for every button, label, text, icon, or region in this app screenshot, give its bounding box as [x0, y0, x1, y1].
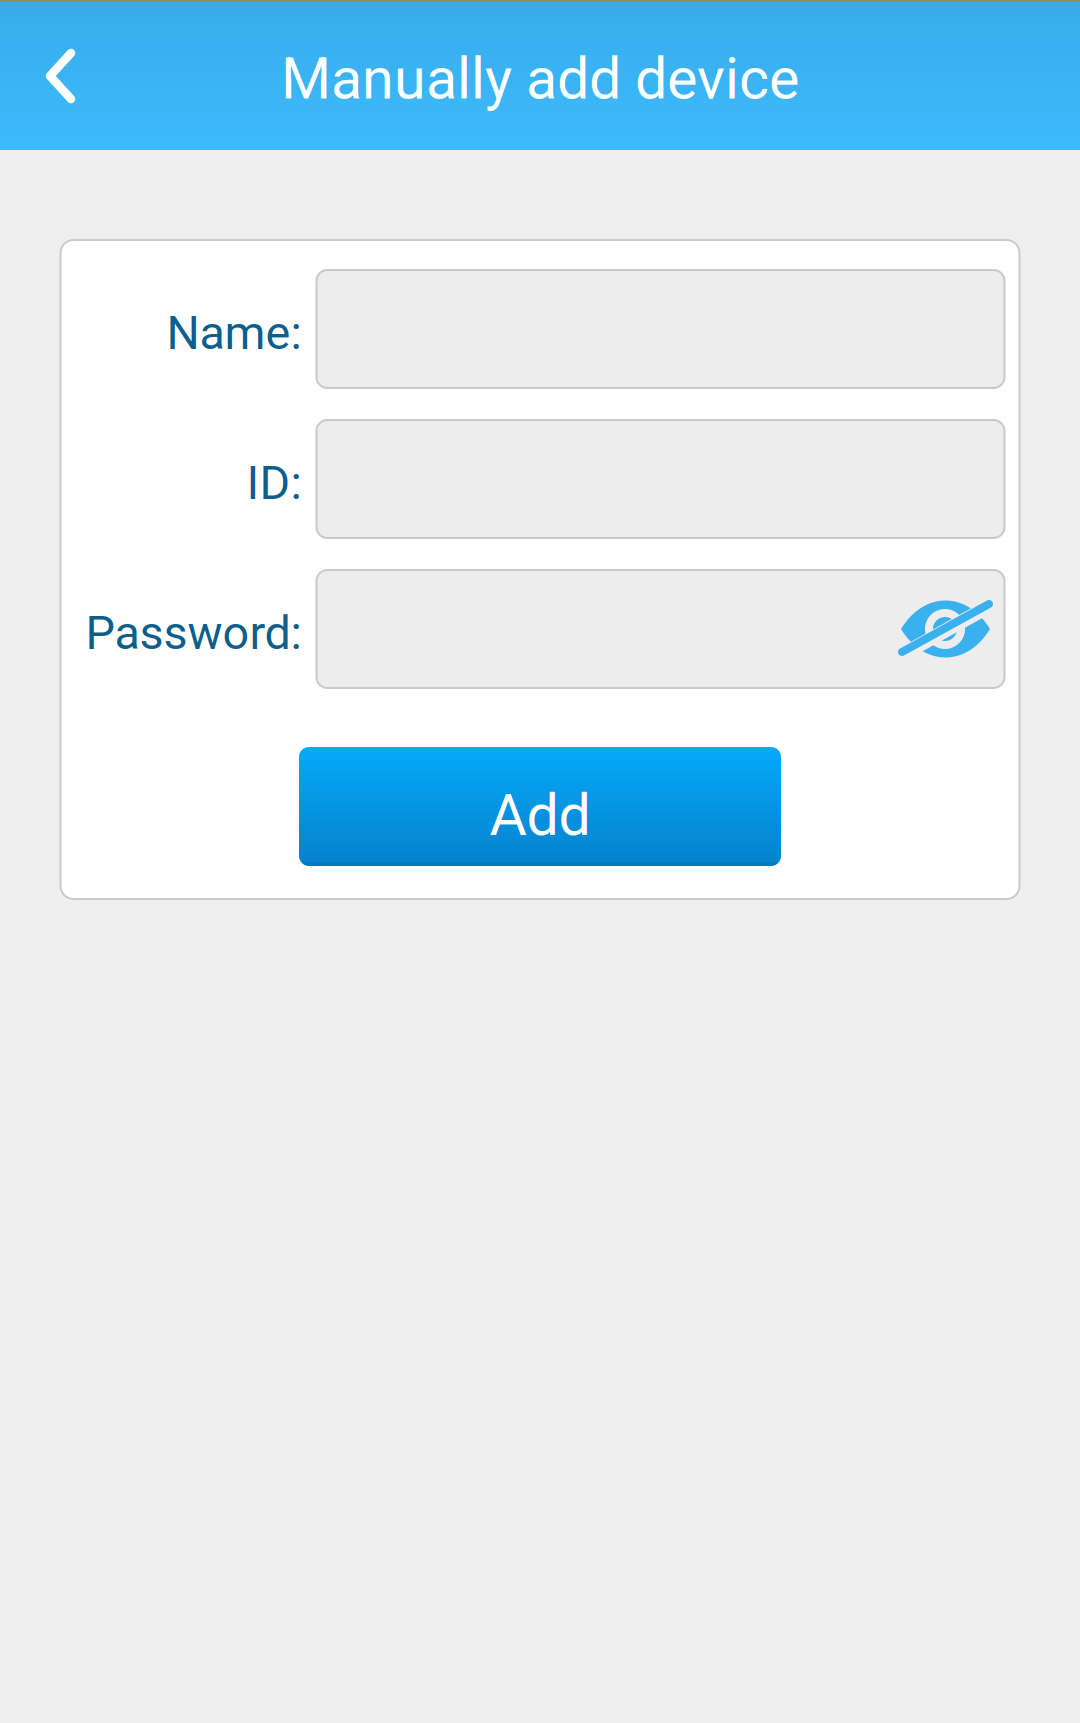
button[interactable]: Show password — [893, 570, 997, 688]
staticText: Add — [489, 782, 590, 849]
button[interactable]: Show password — [893, 420, 997, 538]
staticText: Name: — [166, 306, 301, 360]
button[interactable]: Name: — [316, 270, 1004, 388]
button[interactable]: Add — [299, 747, 781, 866]
staticText: Password: — [85, 606, 301, 660]
button[interactable]: Password: — [316, 570, 1004, 688]
button[interactable]: ID: — [316, 420, 1004, 538]
staticText: ID: — [246, 456, 301, 510]
button[interactable]: Show password — [893, 270, 997, 388]
button[interactable]: Back — [0, 2, 114, 150]
staticText: Manually add device — [281, 45, 799, 113]
